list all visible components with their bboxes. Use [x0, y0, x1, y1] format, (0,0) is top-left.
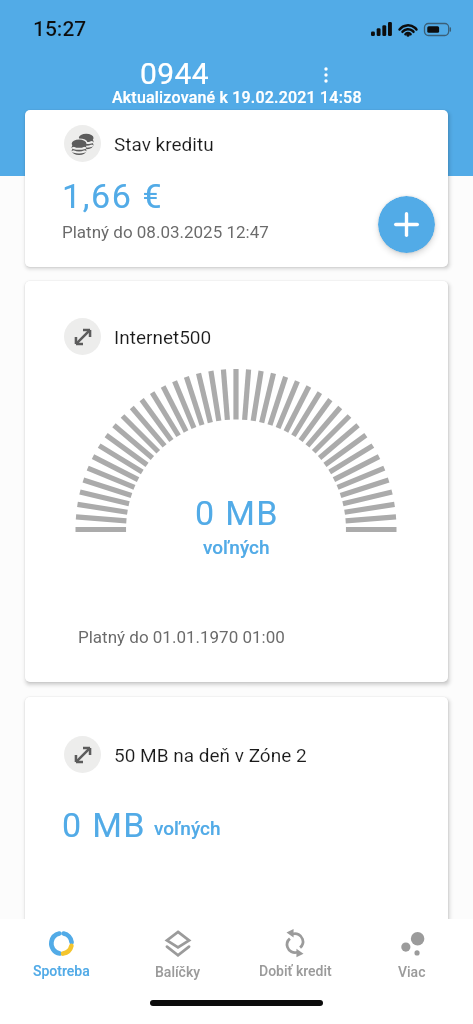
button[interactable]: Dobiť kredit: [239, 924, 351, 985]
staticText: Dobiť kredit: [259, 963, 332, 979]
staticText: Viac: [398, 964, 426, 980]
staticText: 1,66 €: [62, 176, 164, 216]
staticText: Spotreba: [33, 963, 90, 979]
staticText: 0 MB: [195, 493, 279, 533]
staticText: Platný do 08.03.2025 12:47: [62, 222, 269, 242]
button[interactable]: 50 MB na deň v Zóne 2: [25, 697, 448, 927]
button[interactable]: Viac: [356, 923, 468, 986]
staticText: Balíčky: [155, 964, 201, 980]
button[interactable]: Spotreba: [5, 925, 117, 985]
staticText: Aktualizované k 19.02.2021 14:58: [112, 88, 362, 107]
button[interactable]: Add credit: [378, 196, 435, 253]
staticText: 15:27: [33, 17, 87, 42]
staticText: 0 MB: [62, 805, 146, 845]
staticText: voľných: [203, 536, 270, 558]
staticText: Platný do 01.01.1970 01:00: [78, 627, 285, 647]
staticText: 0944: [140, 56, 210, 91]
button[interactable]: Internet500: [25, 281, 448, 682]
staticText: Stav kreditu: [114, 133, 214, 155]
button[interactable]: Stav kreditu: [25, 110, 448, 267]
button[interactable]: More options: [305, 54, 347, 96]
staticText: Internet500: [114, 326, 212, 348]
staticText: voľných: [154, 817, 221, 839]
staticText: 50 MB na deň v Zóne 2: [114, 744, 307, 766]
button[interactable]: Balíčky: [122, 923, 234, 986]
